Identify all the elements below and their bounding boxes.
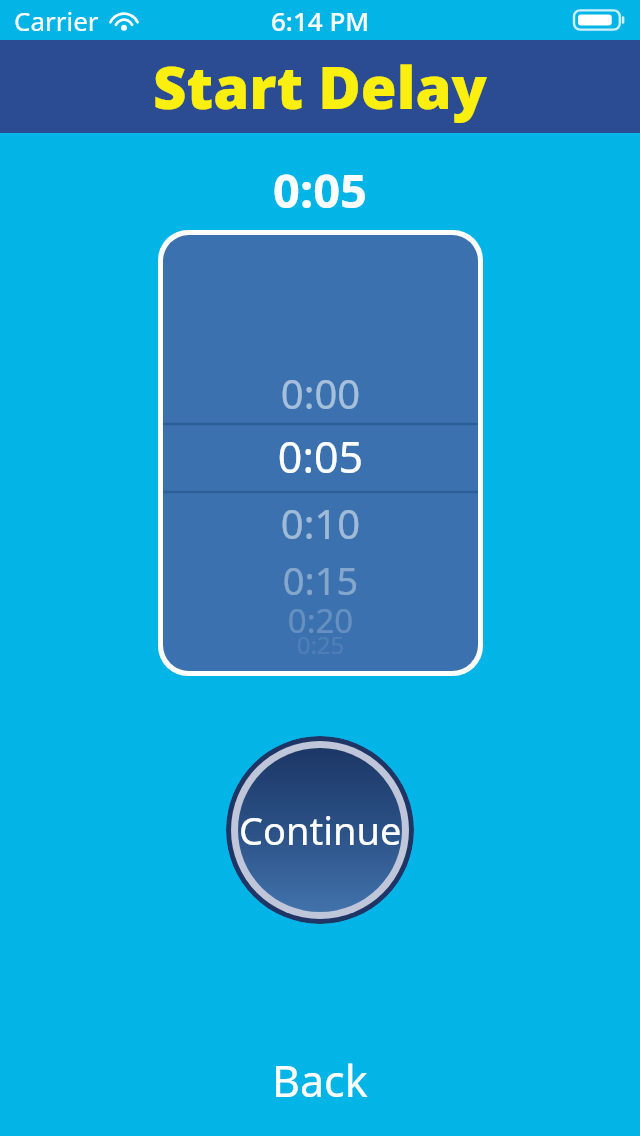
staticText: 0:10: [163, 496, 478, 550]
staticText: Carrier: [14, 3, 99, 38]
staticText: 0:05: [163, 427, 478, 486]
other: Wi-Fi signal: [109, 8, 139, 32]
staticText: 0:20: [163, 598, 478, 643]
staticText: 0:15: [163, 554, 478, 606]
staticText: 0:25: [163, 628, 478, 661]
button[interactable]: Back: [242, 1041, 398, 1120]
staticText: 0:00: [163, 366, 478, 420]
staticText: Continue: [239, 804, 402, 856]
staticText: 6:14 PM: [271, 3, 370, 38]
button[interactable]: Continue: [226, 736, 414, 924]
staticText: 0:05: [0, 158, 640, 222]
button[interactable]: Start delay picker, 0:05 selected: [163, 235, 478, 671]
staticText: Start Delay: [153, 47, 487, 126]
staticText: Back: [272, 1051, 368, 1110]
other: Battery: [574, 7, 626, 33]
